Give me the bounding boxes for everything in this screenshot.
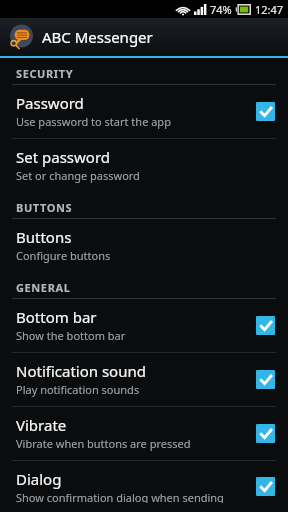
staticText: Set or change password [16, 168, 140, 183]
staticText: Vibrate [16, 415, 67, 435]
staticText: Dialog [16, 469, 62, 489]
staticText: GENERAL [16, 280, 71, 295]
staticText: 74% [210, 2, 232, 17]
staticText: BUTTONS [16, 200, 73, 215]
staticText: Configure buttons [16, 248, 111, 263]
staticText: SECURITY [16, 66, 74, 81]
staticText: Show the bottom bar [16, 328, 126, 343]
staticText: Bottom bar [16, 307, 97, 327]
staticText: ABC Messenger [42, 27, 153, 47]
staticText: 12:47 [255, 2, 284, 17]
staticText: Use password to start the app [16, 114, 171, 129]
button[interactable]: Bottom bar [0, 299, 288, 352]
button[interactable]: Password [0, 85, 288, 138]
staticText: Show confirmation dialog when sending me… [16, 490, 244, 503]
button[interactable]: Dialog [0, 461, 288, 512]
button[interactable]: Set password [0, 139, 288, 192]
button[interactable]: Buttons [0, 219, 288, 272]
staticText: Play notification sounds [16, 382, 140, 397]
button[interactable]: Notification sound [0, 353, 288, 406]
button[interactable]: Vibrate [0, 407, 288, 460]
staticText: Notification sound [16, 361, 146, 381]
button[interactable]: Toggle setting [252, 473, 278, 499]
button[interactable]: Toggle setting [252, 98, 278, 124]
staticText: Buttons [16, 227, 72, 247]
staticText: Set password [16, 147, 111, 167]
button[interactable]: Toggle setting [252, 312, 278, 338]
staticText: Vibrate when buttons are pressed [16, 436, 191, 451]
button[interactable]: Toggle setting [252, 420, 278, 446]
button[interactable]: Toggle setting [252, 366, 278, 392]
staticText: Password [16, 93, 84, 113]
